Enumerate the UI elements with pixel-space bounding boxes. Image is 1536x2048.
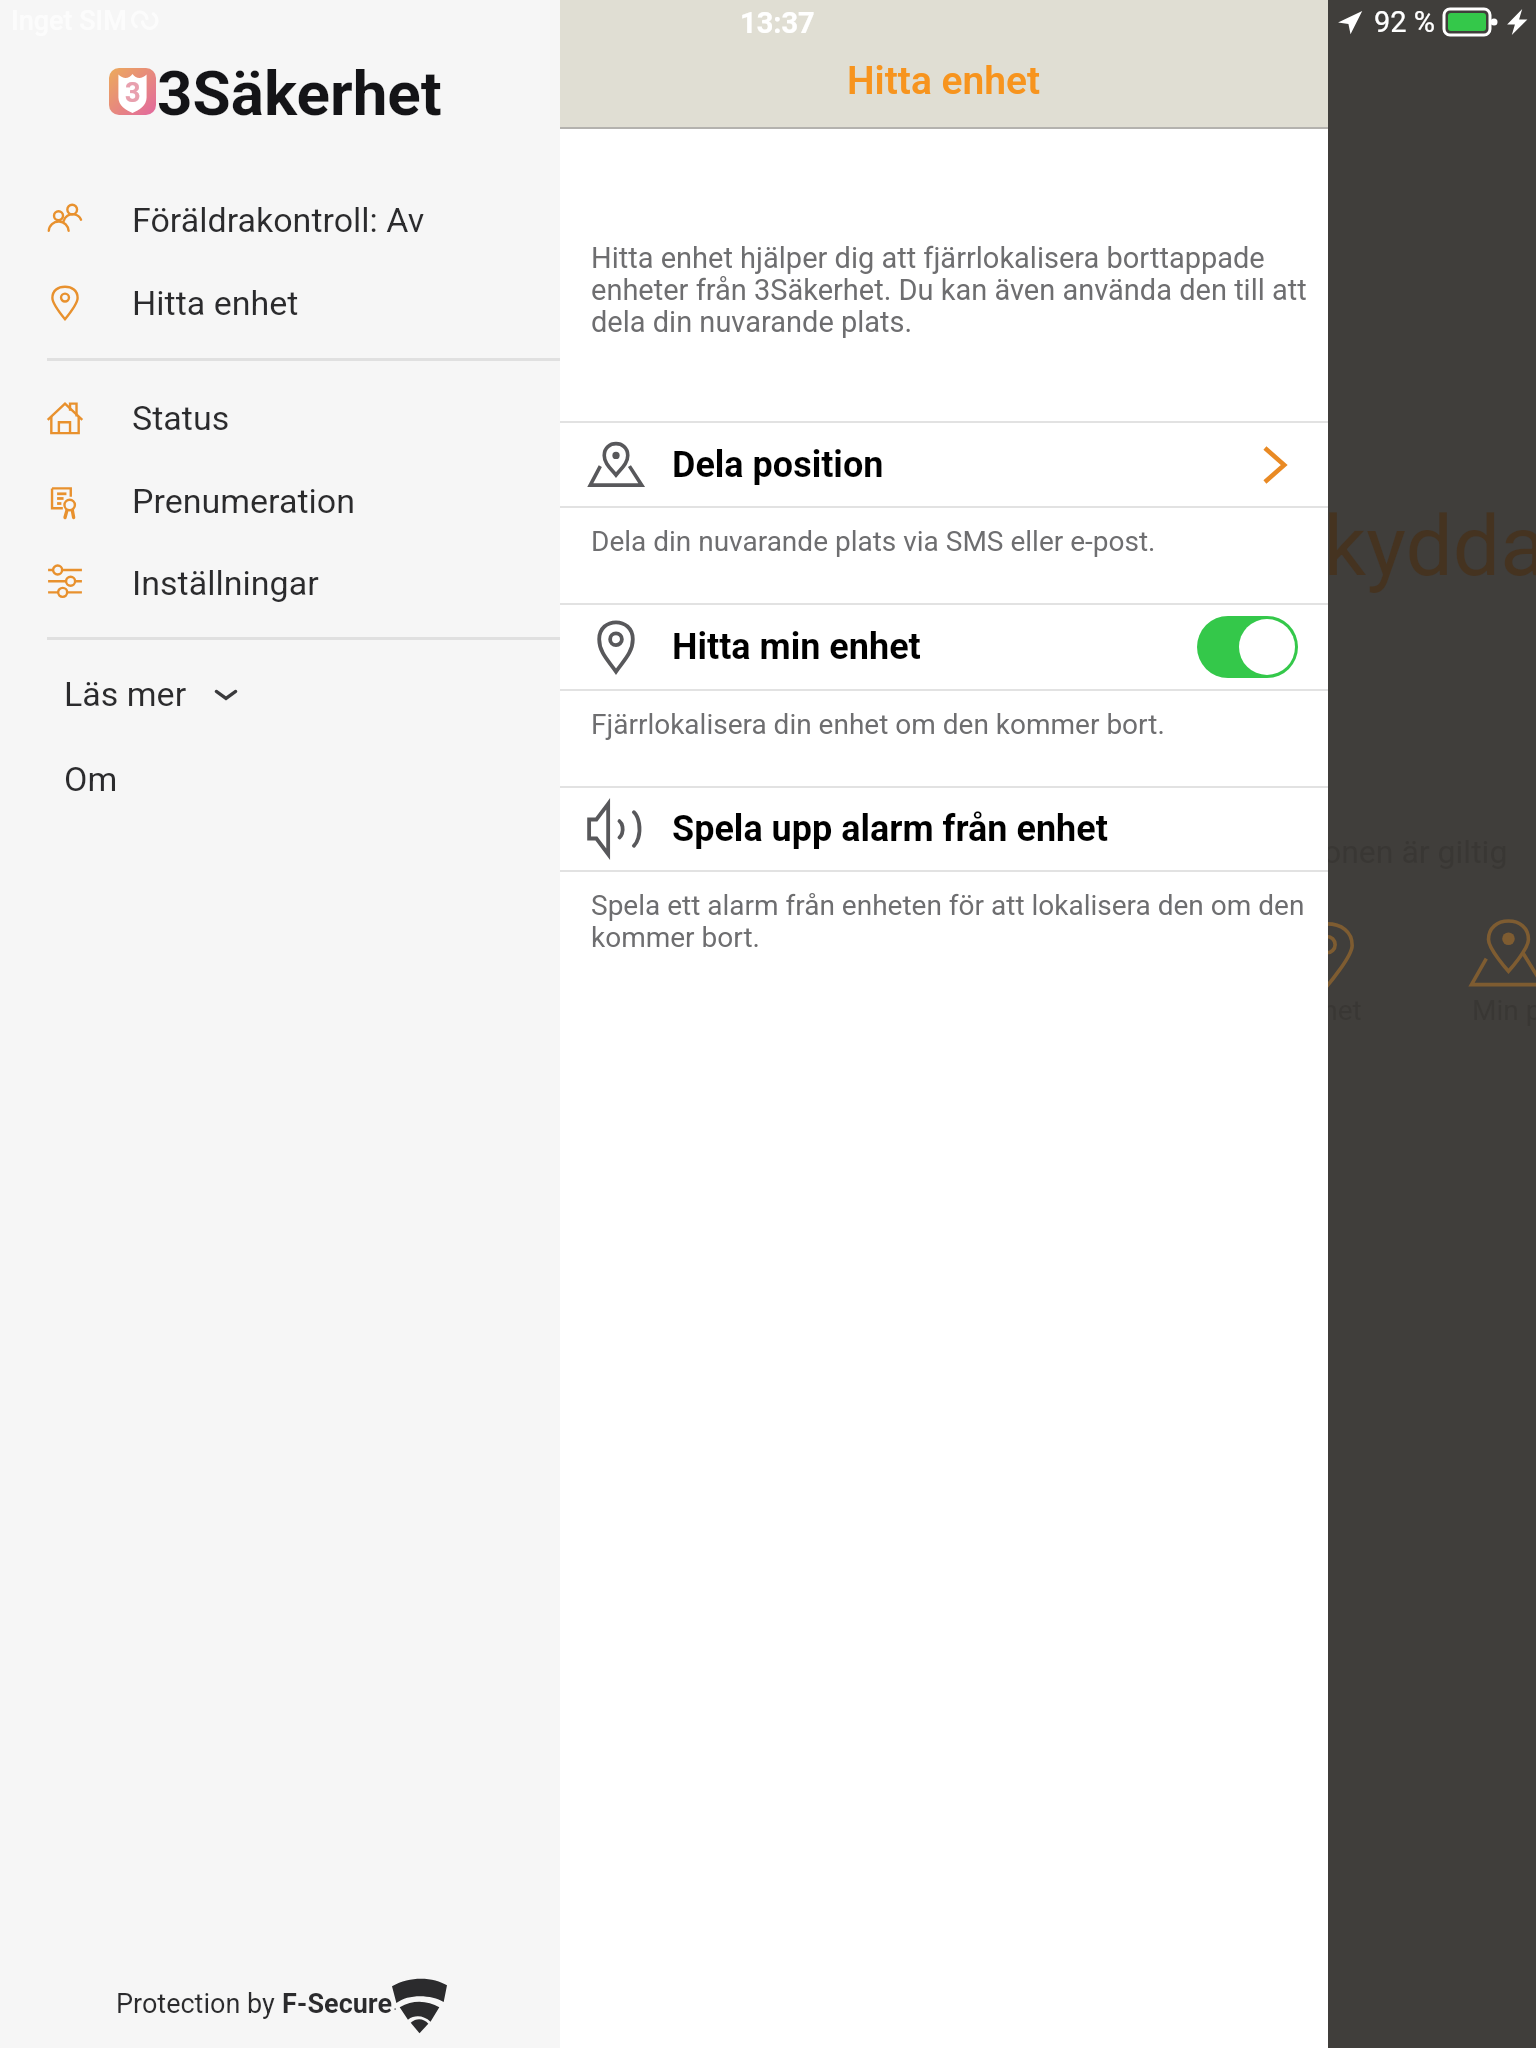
button[interactable]: Min p [1460,914,1536,1031]
button[interactable]: Spela upp alarm från enhet [560,787,1328,871]
button[interactable]: Om [0,744,560,814]
staticText: Spela upp alarm från enhet [672,808,1108,850]
staticText: F-Secure [282,1988,393,2020]
staticText: enhet [1292,994,1362,1027]
staticText: Inställningar [132,563,319,603]
button[interactable]: Open Dela position [1252,442,1298,488]
staticText: 13:37 [740,6,815,40]
staticText: Du är skyddad [1063,497,1536,595]
staticText: 3Säkerhet [157,57,442,130]
staticText: Prenumeration [132,481,355,521]
button[interactable]: Hitta enhet [0,267,560,339]
staticText: Dela position [672,444,884,486]
staticText: Om [64,759,118,799]
staticText: Spela ett alarm från enheten för att lok… [591,889,1328,954]
staticText: . [393,1994,398,2014]
staticText: Hitta enhet [132,283,299,323]
staticText: Dela din nuvarande plats via SMS eller e… [591,525,1328,558]
button[interactable]: Inställningar [0,547,560,619]
staticText: Hitta enhet [847,58,1041,104]
button[interactable]: Toggle Hitta min enhet [1197,616,1298,678]
staticText: Föräldrakontroll: Av [132,200,425,240]
button[interactable]: Läs mer [0,659,560,729]
button[interactable]: Hitta min enhet [560,604,1328,690]
staticText: Fjärrlokalisera din enhet om den kommer … [591,708,1328,741]
button[interactable]: Status [0,382,560,454]
staticText: Hitta min enhet [672,626,921,668]
button[interactable]: Föräldrakontroll: Av [0,184,560,256]
staticText: Läs mer [64,674,187,714]
staticText: Protection by [116,1988,282,2020]
staticText: Status [132,398,230,438]
staticText: 3 [125,77,141,109]
button[interactable]: Dela position [560,422,1328,507]
button[interactable]: enhet [1280,914,1374,1031]
staticText: 92 % [1374,5,1436,39]
button[interactable]: Prenumeration [0,465,560,537]
staticText: Prenumerationen är giltig [1149,833,1508,871]
staticText: Hitta enhet hjälper dig att fjärrlokalis… [591,241,1321,339]
